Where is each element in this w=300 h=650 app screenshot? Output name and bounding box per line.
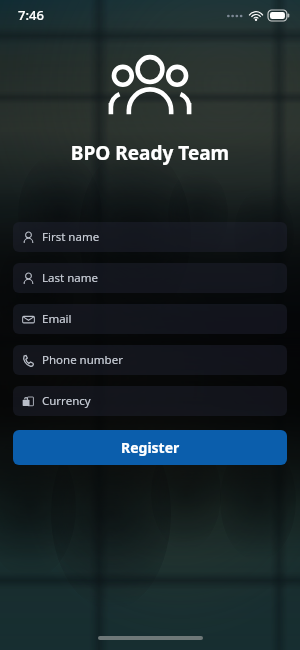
staticText: First name xyxy=(42,229,100,245)
staticText: Currency xyxy=(42,393,91,409)
button[interactable]: Last name xyxy=(13,263,287,293)
staticText: Register xyxy=(121,438,180,457)
staticText: Email xyxy=(42,311,72,327)
staticText: Phone number xyxy=(42,352,123,368)
button[interactable]: Phone number xyxy=(13,345,287,375)
button[interactable]: Currency xyxy=(13,386,287,416)
staticText: 7:46 xyxy=(18,6,44,24)
staticText: Last name xyxy=(42,270,98,286)
button[interactable]: Register xyxy=(13,430,287,465)
button[interactable]: Email xyxy=(13,304,287,334)
staticText: BPO Ready Team xyxy=(0,140,300,166)
other: BPO Ready Team logo xyxy=(104,55,196,117)
button[interactable]: First name xyxy=(13,222,287,252)
